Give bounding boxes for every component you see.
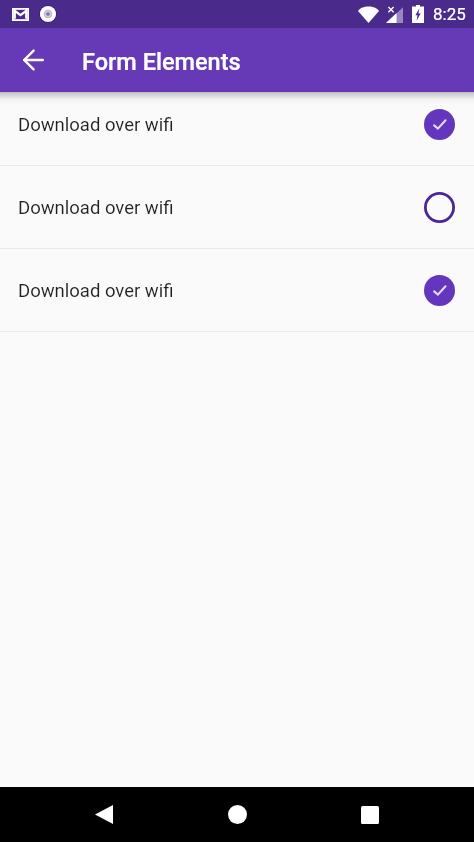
button[interactable]: Download over wifi xyxy=(0,249,474,332)
button[interactable]: Download over wifi xyxy=(0,83,474,166)
button[interactable]: Recent apps xyxy=(342,787,398,842)
button[interactable]: Navigate up xyxy=(9,36,57,84)
button[interactable]: Download over wifi xyxy=(0,166,474,249)
button[interactable]: Home xyxy=(209,787,265,842)
staticText: Download over wifi xyxy=(18,197,424,219)
staticText: Download over wifi xyxy=(18,280,424,302)
staticText: Form Elements xyxy=(82,48,241,76)
button[interactable]: Back xyxy=(76,787,132,842)
staticText: Download over wifi xyxy=(18,114,424,136)
staticText: 8:25 xyxy=(433,4,466,24)
